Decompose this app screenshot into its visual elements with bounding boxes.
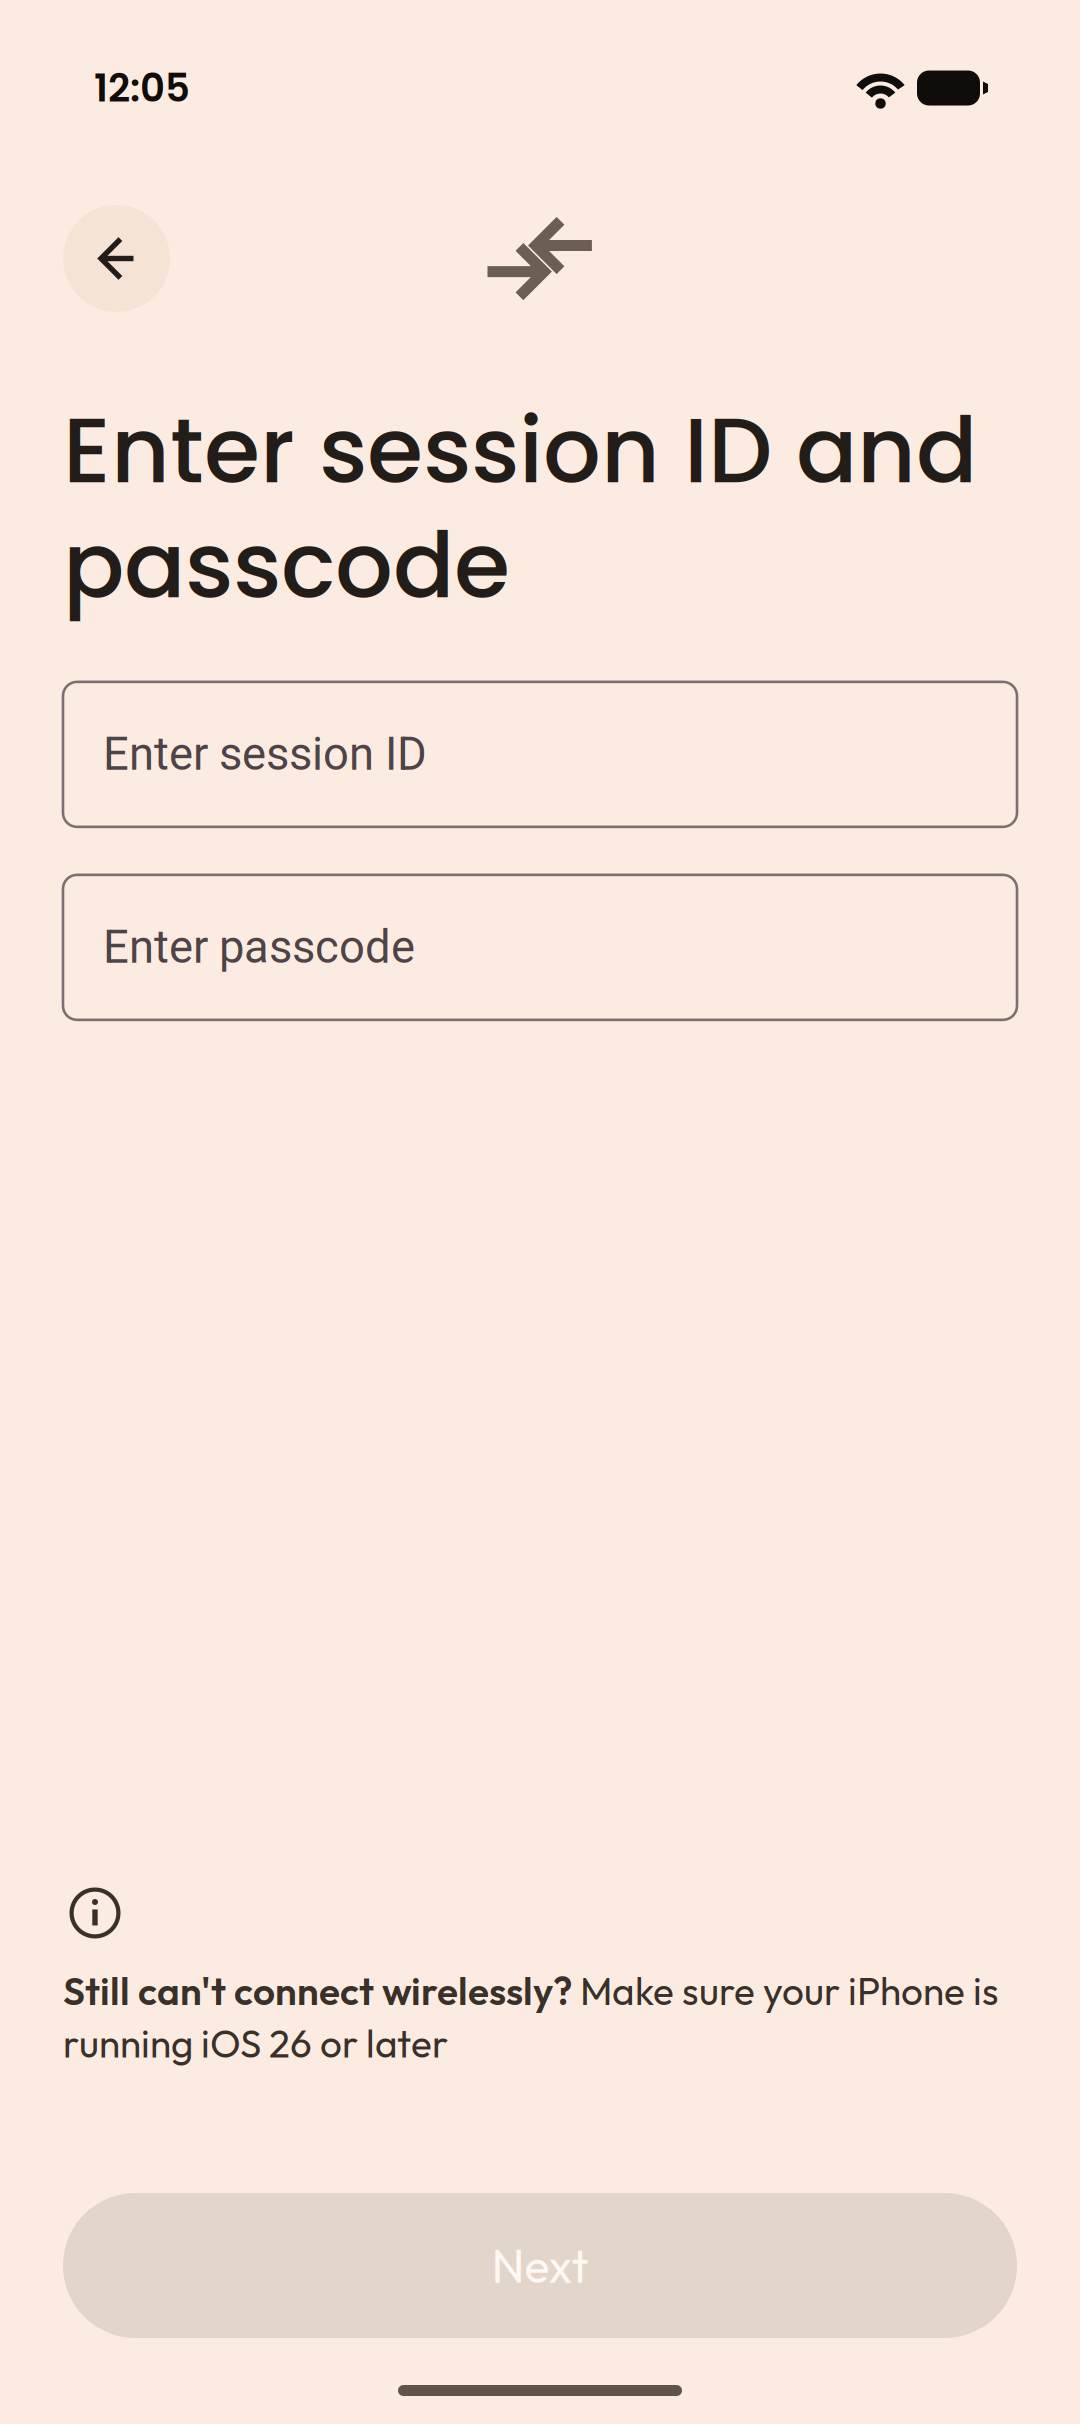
staticText: Next [491,2236,588,2295]
button[interactable]: Enter passcode [63,875,1017,1020]
staticText: Still can't connect wirelessly? Make sur… [63,1967,999,2067]
staticText: Enter session ID [103,728,427,781]
button[interactable]: Next [63,2193,1017,2338]
staticText: Enter session ID and passcode [63,387,977,629]
staticText: Enter passcode [103,921,415,974]
button[interactable]: Enter session ID [63,682,1017,827]
staticText: 12:05 [94,61,190,115]
button[interactable]: Back [63,205,170,312]
